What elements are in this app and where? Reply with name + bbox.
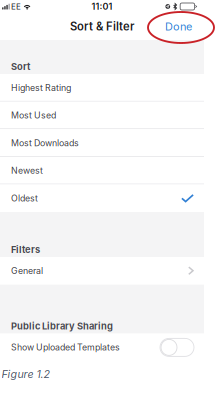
button[interactable]: Show Uploaded Templates (0, 334, 204, 361)
staticText: Filters (11, 244, 40, 255)
button[interactable]: Most Used (0, 102, 204, 129)
button[interactable]: Newest (0, 157, 204, 184)
staticText: General (11, 265, 43, 276)
button[interactable]: Most Downloads (0, 129, 204, 157)
staticText: Newest (11, 165, 43, 176)
staticText: Most Used (11, 110, 56, 121)
staticText: Oldest (11, 193, 38, 203)
button[interactable]: Oldest (0, 184, 204, 212)
button[interactable]: Highest Rating (0, 74, 204, 102)
button[interactable]: General (0, 257, 204, 285)
staticText: 11:01 (91, 1, 112, 12)
staticText: Show Uploaded Templates (11, 342, 120, 353)
button[interactable]: Done (159, 16, 198, 37)
staticText: EE (11, 2, 21, 11)
staticText: Done (165, 20, 192, 33)
staticText: Sort (11, 61, 30, 72)
staticText: Figure 1.2 (1, 368, 50, 381)
staticText: Highest Rating (11, 82, 71, 93)
staticText: Sort & Filter (70, 20, 134, 33)
staticText: Public Library Sharing (11, 320, 113, 332)
staticText: Most Downloads (11, 138, 79, 148)
